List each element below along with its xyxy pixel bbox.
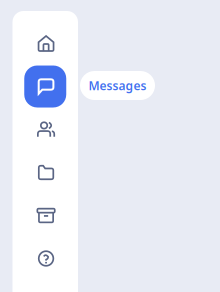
button[interactable]: Messages: [80, 71, 155, 100]
staticText: Messages: [88, 77, 146, 93]
button[interactable]: Home: [24, 22, 66, 65]
button[interactable]: Contacts: [24, 108, 66, 151]
button[interactable]: Files: [24, 151, 66, 194]
button[interactable]: Messages: [24, 65, 66, 108]
button[interactable]: Help: [24, 237, 66, 280]
button[interactable]: Archive: [24, 194, 66, 237]
